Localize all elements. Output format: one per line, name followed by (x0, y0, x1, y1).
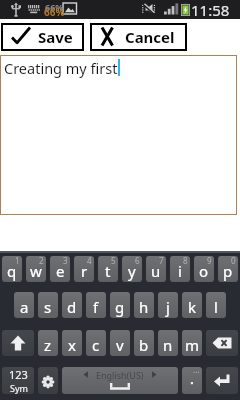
button[interactable]: x (62, 330, 82, 356)
button[interactable]: m (182, 330, 202, 356)
staticText: b (139, 335, 149, 355)
staticText: p (223, 261, 233, 281)
staticText: e (56, 261, 65, 281)
staticText: y (128, 261, 136, 281)
button[interactable]: Cancel (90, 23, 187, 51)
staticText: 0 (231, 256, 236, 266)
staticText: d (67, 297, 77, 317)
staticText: f (93, 297, 99, 317)
button[interactable]: q (2, 256, 22, 282)
button[interactable]: Save (1, 23, 84, 51)
staticText: i (178, 261, 182, 281)
staticText: Sym (10, 382, 28, 394)
staticText: 1 (15, 256, 20, 266)
staticText: Cancel (125, 27, 175, 47)
button[interactable]: n (158, 330, 178, 356)
staticText: o (199, 261, 209, 281)
staticText: 8 (183, 256, 188, 266)
staticText: g (115, 297, 125, 317)
staticText: z (44, 335, 52, 355)
button[interactable]: Space (62, 367, 178, 394)
button[interactable]: y (122, 256, 142, 282)
staticText: l (214, 297, 218, 317)
staticText: 66% (45, 1, 64, 13)
button[interactable]: v (110, 330, 130, 356)
staticText: 9 (207, 256, 212, 266)
button[interactable]: r (74, 256, 94, 282)
staticText: a (20, 297, 29, 317)
staticText: 2 (39, 256, 44, 266)
button[interactable]: j (158, 292, 178, 318)
button[interactable]: u (146, 256, 166, 282)
staticText: 4 (87, 256, 92, 266)
staticText: h (139, 297, 149, 317)
staticText: s (44, 297, 52, 317)
button[interactable]: h (134, 292, 154, 318)
staticText: 3 (63, 256, 68, 266)
staticText: k (188, 297, 197, 317)
button[interactable]: f (86, 292, 106, 318)
staticText: c (92, 335, 100, 355)
button[interactable]: 123 (2, 367, 34, 394)
button[interactable]: Settings (38, 367, 58, 394)
button[interactable]: p (218, 256, 238, 282)
button[interactable]: Backspace (206, 330, 238, 356)
staticText: Creating my first (4, 58, 118, 78)
button[interactable]: w (26, 256, 46, 282)
staticText: t (105, 261, 111, 281)
button[interactable]: i (170, 256, 190, 282)
button[interactable]: a (14, 292, 34, 318)
button[interactable]: o (194, 256, 214, 282)
staticText: ... (193, 367, 200, 375)
staticText: 11:58 (191, 0, 230, 19)
button[interactable]: Shift (2, 330, 34, 356)
staticText: q (7, 261, 17, 281)
staticText: 123 (9, 367, 28, 382)
button[interactable]: z (38, 330, 58, 356)
staticText: v (116, 335, 124, 355)
staticText: 7 (159, 256, 164, 266)
button[interactable]: g (110, 292, 130, 318)
staticText: 6 (135, 256, 140, 266)
staticText: m (185, 335, 200, 355)
button[interactable]: Period (182, 367, 202, 394)
staticText: j (166, 297, 170, 317)
button[interactable]: d (62, 292, 82, 318)
staticText: u (151, 261, 161, 281)
staticText: n (163, 335, 173, 355)
staticText: Save (38, 27, 73, 47)
staticText: 66% (44, 5, 65, 19)
button[interactable]: c (86, 330, 106, 356)
button[interactable]: Enter (206, 367, 238, 394)
staticText: English(US) (96, 369, 144, 381)
button[interactable]: k (182, 292, 202, 318)
staticText: w (30, 261, 42, 281)
button[interactable]: t (98, 256, 118, 282)
button[interactable]: l (206, 292, 226, 318)
staticText: r (81, 261, 88, 281)
button[interactable]: b (134, 330, 154, 356)
staticText: x (68, 335, 76, 355)
button[interactable]: s (38, 292, 58, 318)
button[interactable]: e (50, 256, 70, 282)
staticText: 5 (111, 256, 116, 266)
